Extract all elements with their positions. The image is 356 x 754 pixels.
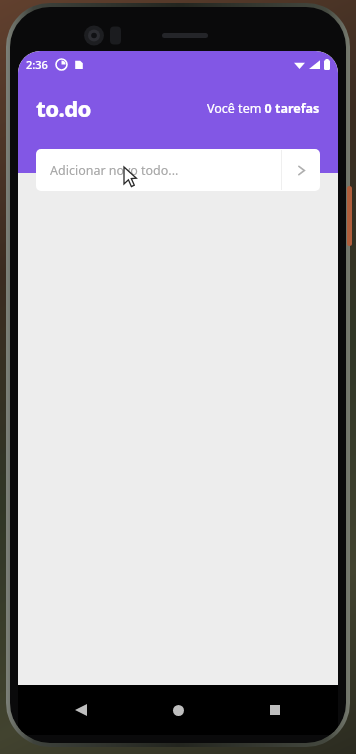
button[interactable]: Recent apps	[258, 693, 292, 727]
button[interactable]: Home	[161, 693, 195, 727]
staticText: Adicionar novo todo...	[50, 162, 179, 179]
button[interactable]: Back	[64, 693, 98, 727]
staticText: 2:36	[26, 57, 48, 72]
staticText: to.do	[36, 93, 91, 123]
staticText: Você tem 0 tarefas	[207, 100, 320, 117]
button[interactable]: Adicionar	[282, 149, 320, 191]
button[interactable]: Adicionar novo todo...	[36, 149, 320, 191]
